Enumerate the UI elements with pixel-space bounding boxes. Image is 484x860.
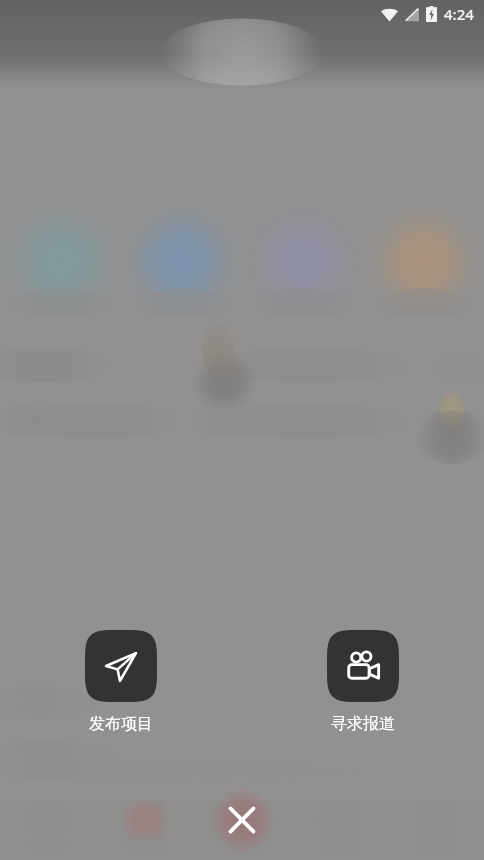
button[interactable]: 寻求报道 bbox=[303, 630, 423, 734]
staticText: 4:24 bbox=[444, 4, 474, 24]
button[interactable]: 发布项目 bbox=[61, 630, 181, 734]
staticText: 寻求报道 bbox=[303, 714, 423, 734]
button[interactable]: 关闭 bbox=[208, 786, 276, 854]
staticText: 发布项目 bbox=[61, 714, 181, 734]
